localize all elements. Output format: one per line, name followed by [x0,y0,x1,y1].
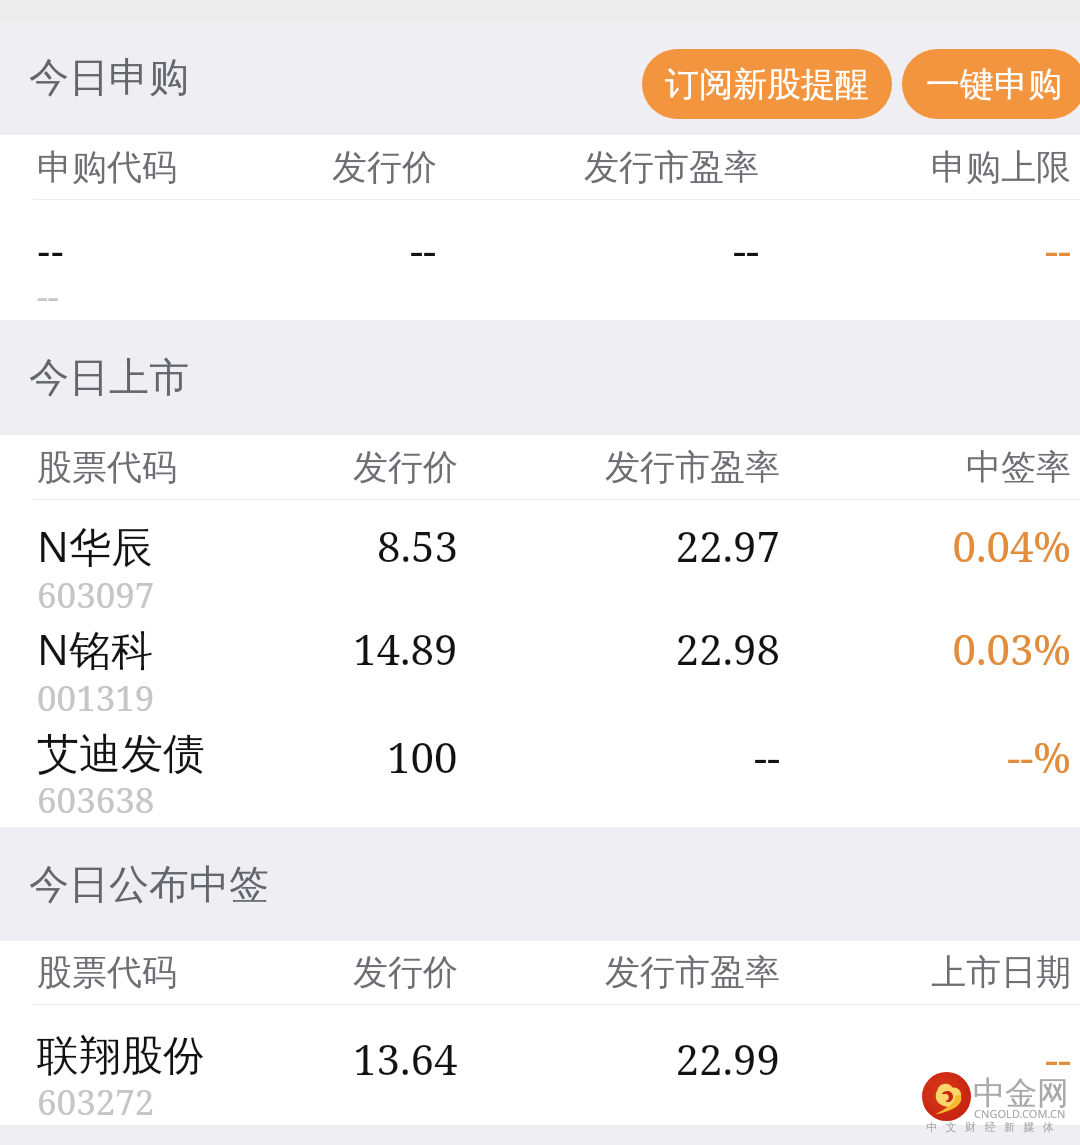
staticText: 001319 [37,674,155,722]
staticText: 22.97 [458,517,780,574]
staticText: 603097 [37,571,155,619]
staticText: 22.99 [458,1030,780,1087]
staticText: 一键申购 [926,63,1062,106]
staticText: 中签率 [780,445,1071,489]
staticText: 603272 [37,1078,155,1126]
staticText: 发行市盈率 [458,950,780,994]
staticText: 0.03% [780,620,1071,677]
button[interactable]: 一键申购 [902,49,1080,119]
staticText: 603638 [37,776,155,824]
button[interactable]: 订阅新股提醒 [642,49,892,119]
staticText: 100 [387,728,458,785]
staticText: 订阅新股提醒 [665,63,869,106]
staticText: -- [37,221,65,278]
staticText: 8.53 [377,517,458,574]
staticText: N华辰 [37,517,153,574]
staticText: 今日公布中签 [29,859,269,909]
staticText: 股票代码 [37,950,177,994]
button[interactable]: N铭科 [0,600,1080,705]
staticText: 22.98 [458,620,780,677]
staticText: 股票代码 [37,445,177,489]
staticText: 中文财经新媒体 [926,1120,1063,1134]
staticText: -- [437,221,759,278]
staticText: 申购上限 [759,145,1071,189]
button[interactable]: 联翔股份 [0,1005,1080,1125]
staticText: 申购代码 [37,145,177,189]
staticText: 发行价 [353,445,458,489]
staticText: 上市日期 [780,950,1071,994]
staticText: 发行市盈率 [458,445,780,489]
button[interactable]: 艾迪发债 [0,705,1080,827]
staticText: 今日上市 [29,352,189,402]
staticText: CNGOLD.COM.CN [974,1106,1066,1121]
staticText: 中金网 [973,1073,1069,1113]
staticText: -- [37,272,59,320]
staticText: 联翔股份 [37,1030,205,1083]
staticText: -- [410,221,437,278]
button[interactable]: -- [0,213,1080,320]
staticText: -- [458,728,780,785]
button[interactable]: N华辰 [0,497,1080,602]
staticText: N铭科 [37,620,153,677]
staticText: 艾迪发债 [37,728,205,781]
staticText: 0.04% [780,517,1071,574]
staticText: 14.89 [353,620,458,677]
staticText: 今日申购 [29,52,189,102]
staticText: -- [780,1030,1071,1087]
staticText: --% [780,728,1071,785]
staticText: 发行市盈率 [437,145,759,189]
staticText: -- [759,221,1071,278]
staticText: 13.64 [353,1030,458,1087]
staticText: 发行价 [332,145,437,189]
staticText: 发行价 [353,950,458,994]
